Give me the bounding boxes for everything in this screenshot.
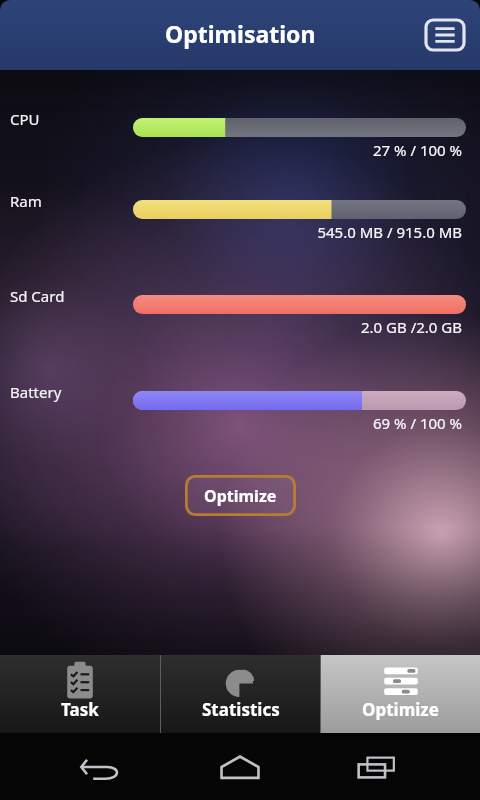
button[interactable]: Home	[204, 743, 276, 791]
staticText: Battery	[10, 382, 62, 402]
button[interactable]: Optimize	[321, 655, 480, 733]
button[interactable]: Task	[0, 655, 160, 733]
staticText: 69 % / 100 %	[0, 413, 462, 433]
staticText: Optimize	[362, 698, 439, 721]
staticText: Sd Card	[10, 286, 65, 306]
button[interactable]: Menu	[422, 15, 468, 55]
button[interactable]: Recents	[342, 743, 414, 791]
staticText: 27 % / 100 %	[0, 140, 462, 160]
staticText: 2.0 GB /2.0 GB	[0, 317, 462, 337]
staticText: Ram	[10, 191, 42, 211]
staticText: Task	[61, 698, 99, 721]
staticText: Optimize	[204, 485, 277, 507]
button[interactable]: Statistics	[161, 655, 320, 733]
staticText: CPU	[10, 109, 40, 129]
button[interactable]: Back	[66, 743, 138, 791]
staticText: Statistics	[202, 698, 280, 721]
staticText: Optimisation	[165, 18, 316, 49]
button[interactable]: Optimize	[185, 475, 296, 516]
staticText: 545.0 MB / 915.0 MB	[0, 222, 462, 242]
